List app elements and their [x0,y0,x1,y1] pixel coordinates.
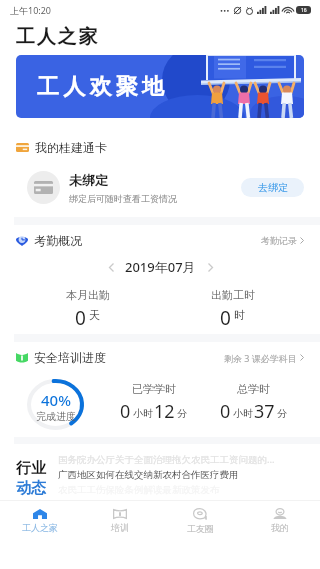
staticText: 小时 [233,407,253,420]
staticText: 天 [89,308,100,322]
staticText: 工人欢聚地 [35,73,166,101]
staticText: 剩余 3 课必学科目 [224,352,297,364]
staticText: 工人之家 [16,25,100,49]
button[interactable]: 去绑定 [241,178,304,197]
staticText: 工人之家 [22,522,58,533]
staticText: 未绑定 [69,172,108,188]
button[interactable]: 工友圈 [160,501,240,540]
staticText: 绑定后可随时查看工资情况 [69,193,177,204]
staticText: 考勤记录 [261,235,297,246]
staticText: 培训 [111,522,129,533]
button[interactable]: 培训 [80,501,160,540]
staticText: 2019年07月 [125,258,196,276]
staticText: 总学时 [237,382,270,396]
button[interactable]: 下一月 [201,258,219,276]
button[interactable]: 工人之家 [0,501,80,540]
staticText: 动态 [16,479,46,498]
staticText: 0 [220,305,231,326]
staticText: 0 [120,399,131,424]
staticText: 16 [301,7,307,14]
staticText: 0 [75,305,86,326]
staticText: 我的 [271,522,289,533]
button[interactable]: 工人欢聚地 [16,55,304,118]
staticText: 0 [220,399,231,424]
button[interactable]: 考勤记录 [261,231,304,250]
button[interactable]: 我的 [240,501,320,540]
staticText: 去绑定 [258,181,288,194]
staticText: 工友圈 [187,523,214,534]
staticText: 小时 [133,407,153,420]
staticText: 上午10:20 [10,4,52,16]
button[interactable]: 上一月 [102,258,120,276]
staticText: 农民工工伤保险条例解读最新政策发布 [58,484,220,496]
staticText: 12 [154,399,175,424]
staticText: 分 [277,407,287,420]
staticText: 完成进度 [36,410,76,423]
button[interactable]: 行业 [0,450,320,498]
staticText: 时 [234,308,245,322]
staticText: 安全培训进度 [34,350,106,365]
staticText: 考勤概况 [34,233,82,248]
staticText: 本月出勤 [66,288,110,302]
staticText: 国务院办公厅关于全面治理拖欠农民工工资问题的... [58,453,275,466]
button[interactable]: 剩余 3 课必学科目 [224,348,304,367]
staticText: 我的桂建通卡 [35,140,107,155]
staticText: 出勤工时 [211,288,255,302]
staticText: 广西地区如何在线交纳新农村合作医疗费用 [58,469,239,481]
staticText: 40% [41,390,71,410]
staticText: 已学学时 [132,382,176,396]
staticText: 分 [177,407,187,420]
button[interactable]: 未绑定 [27,160,304,215]
staticText: 37 [254,399,275,424]
staticText: 行业 [16,459,46,478]
